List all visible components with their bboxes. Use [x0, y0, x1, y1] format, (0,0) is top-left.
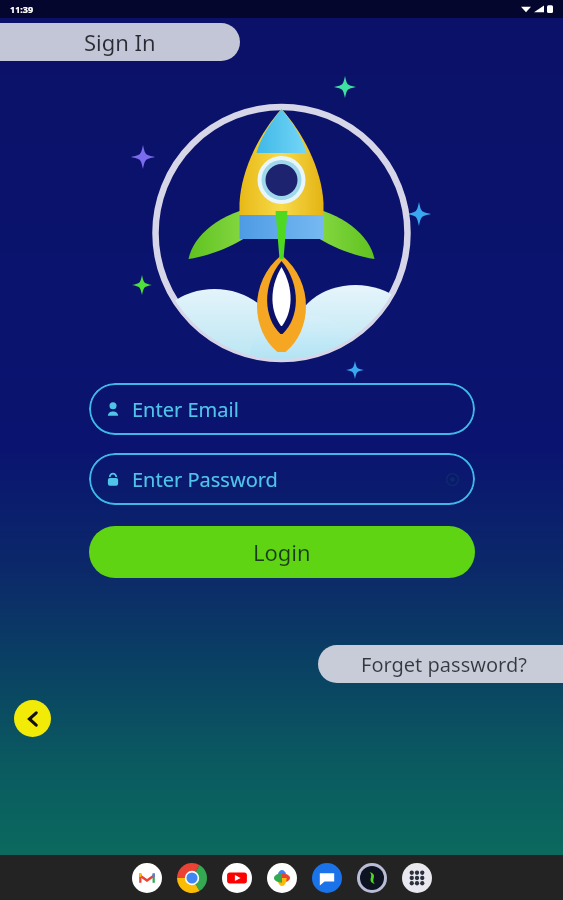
button[interactable]: Login: [89, 526, 475, 578]
button[interactable]: Gmail: [131, 862, 163, 894]
button[interactable]: Spotify: [356, 862, 388, 894]
button[interactable]: YouTube: [221, 862, 253, 894]
button[interactable]: Back: [14, 700, 51, 737]
button[interactable]: Show password: [443, 470, 461, 488]
button[interactable]: Sign In: [0, 23, 240, 61]
button[interactable]: All apps: [401, 862, 433, 894]
staticText: Login: [253, 537, 311, 567]
button[interactable]: Enter Email: [89, 383, 475, 435]
staticText: Sign In: [84, 27, 156, 57]
button[interactable]: Messages: [311, 862, 343, 894]
button[interactable]: Enter Password: [89, 453, 475, 505]
staticText: Enter Password: [132, 466, 278, 493]
button[interactable]: Forget password?: [318, 645, 563, 683]
staticText: 11:39: [10, 3, 34, 15]
button[interactable]: Photos: [266, 862, 298, 894]
staticText: Enter Email: [132, 396, 239, 423]
button[interactable]: Chrome: [176, 862, 208, 894]
staticText: Forget password?: [361, 651, 527, 678]
